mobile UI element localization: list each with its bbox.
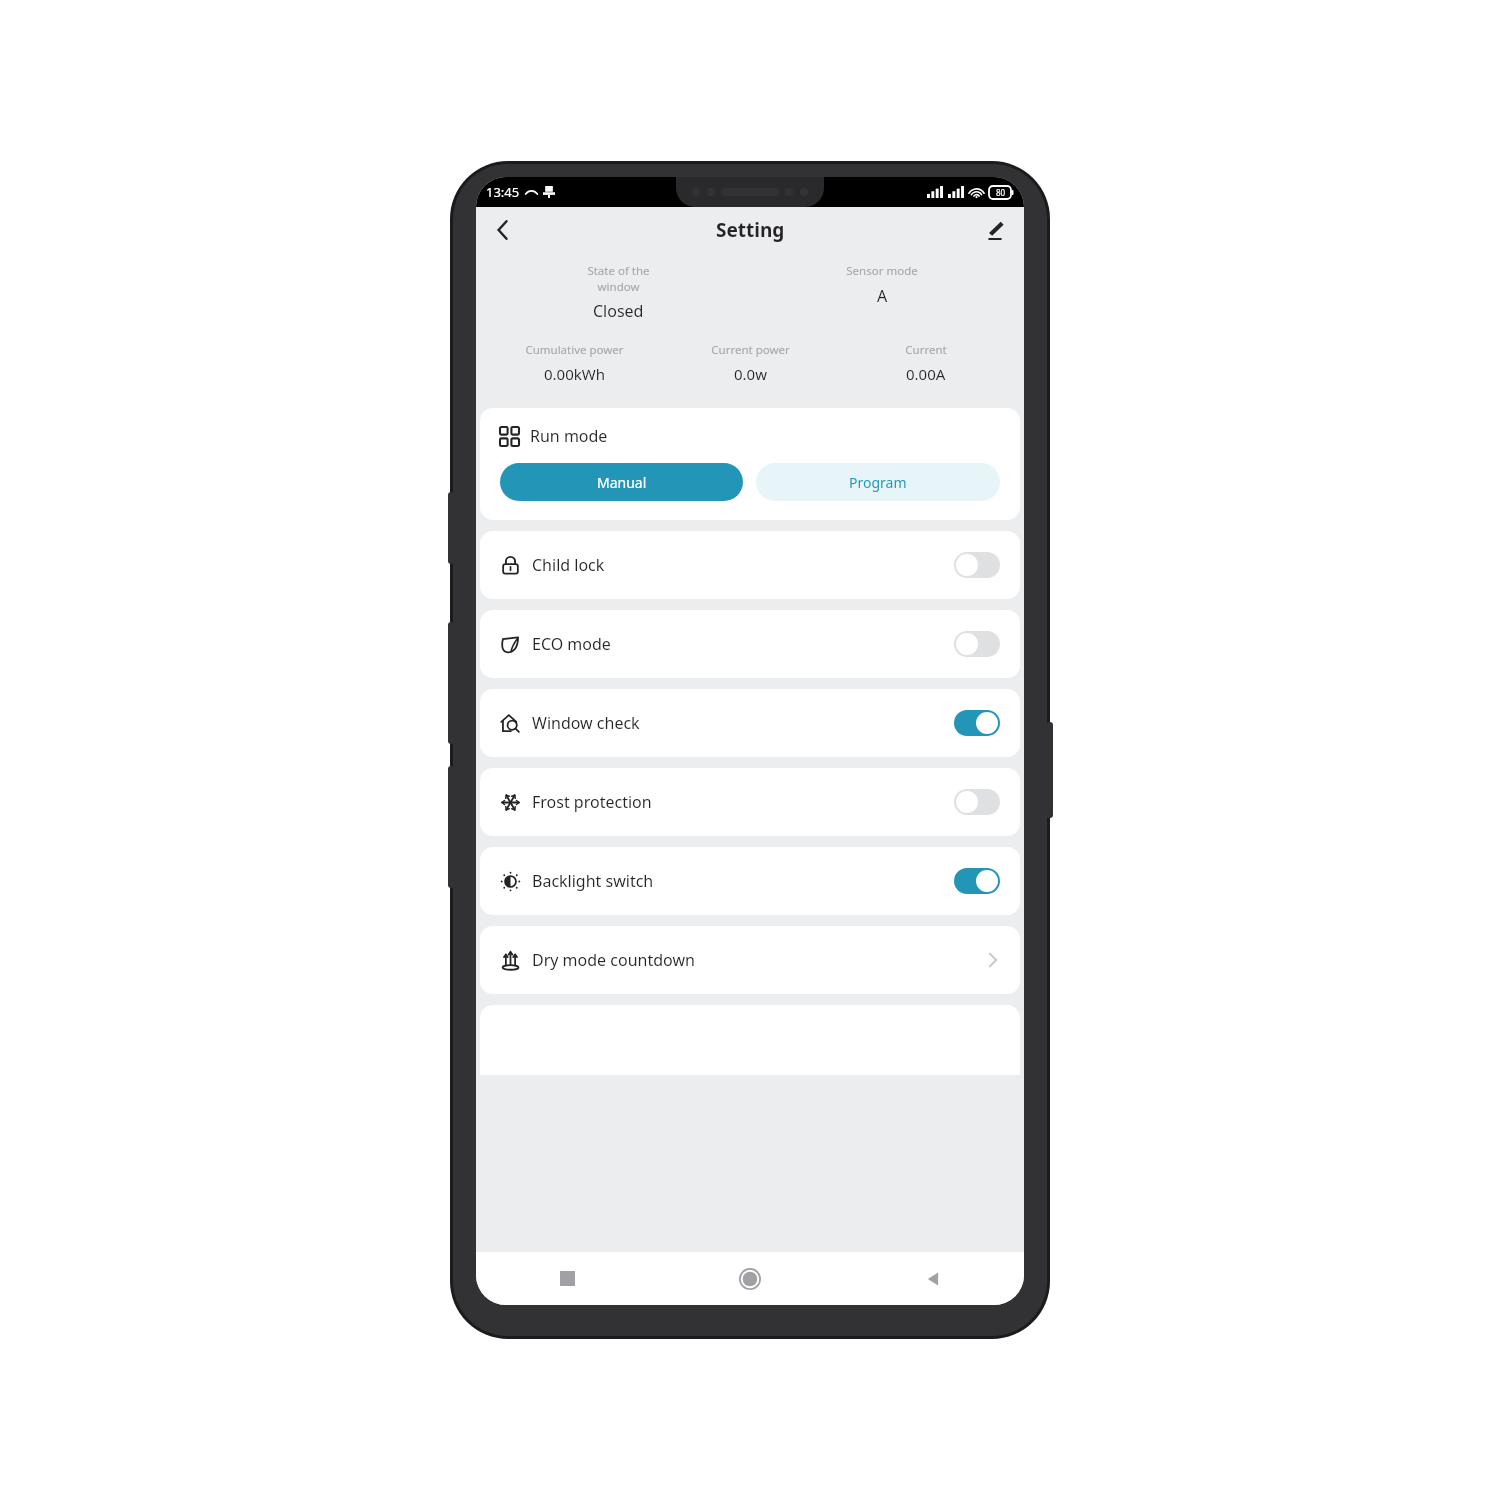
staticText: Cumulative power xyxy=(525,342,624,358)
staticText: Run mode xyxy=(530,425,608,447)
staticText: Window check xyxy=(532,712,640,734)
button[interactable]: Off xyxy=(954,789,1000,815)
button[interactable]: Back xyxy=(482,209,524,251)
button[interactable]: Off xyxy=(954,631,1000,657)
button[interactable]: Home xyxy=(658,1252,841,1305)
staticText: Backlight switch xyxy=(532,870,654,892)
staticText: Child lock xyxy=(532,554,605,576)
staticText: Sensor mode xyxy=(846,263,918,279)
staticText: Dry mode countdown xyxy=(532,949,695,971)
staticText: 0.00kWh xyxy=(544,364,605,384)
staticText: Frost protection xyxy=(532,791,652,813)
staticText: Current power xyxy=(711,342,790,358)
staticText: 80 xyxy=(996,187,1006,198)
staticText: Closed xyxy=(593,300,644,322)
button[interactable]: Manual xyxy=(500,463,743,501)
button[interactable]: Child lock xyxy=(480,531,1020,599)
button[interactable]: ECO mode xyxy=(480,610,1020,678)
button[interactable]: Back xyxy=(841,1252,1024,1305)
staticText: Program xyxy=(849,473,907,492)
staticText: Current xyxy=(905,342,947,358)
button[interactable]: On xyxy=(954,868,1000,894)
staticText: State of the window xyxy=(587,263,650,294)
staticText: ECO mode xyxy=(532,633,611,655)
button[interactable]: Dry mode countdown xyxy=(480,926,1020,994)
button[interactable]: On xyxy=(954,710,1000,736)
button[interactable]: Frost protection xyxy=(480,768,1020,836)
staticText: A xyxy=(877,285,888,307)
staticText: Setting xyxy=(716,217,785,243)
button[interactable]: Window check xyxy=(480,689,1020,757)
button[interactable]: Recent apps xyxy=(476,1252,658,1305)
staticText: 0.00A xyxy=(906,364,946,384)
staticText: 13:45 xyxy=(486,183,520,201)
staticText: 0.0w xyxy=(734,364,767,384)
button[interactable]: Backlight switch xyxy=(480,847,1020,915)
button[interactable]: Off xyxy=(954,552,1000,578)
button[interactable]: Edit xyxy=(974,209,1016,251)
staticText: Manual xyxy=(597,473,647,492)
button[interactable]: Program xyxy=(756,463,1000,501)
